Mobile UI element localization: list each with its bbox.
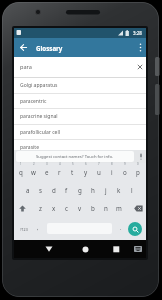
staticText: parafollicular cell: [20, 129, 61, 136]
button[interactable]: parafollicular cell: [14, 124, 146, 140]
button[interactable]: m: [112, 200, 125, 216]
button[interactable]: ?123: [14, 221, 33, 237]
staticText: p: [136, 168, 140, 176]
staticText: w: [31, 168, 36, 176]
button[interactable]: Suggest contact names? Touch for info.: [14, 150, 146, 163]
staticText: a: [26, 186, 30, 194]
button[interactable]: k: [112, 182, 125, 198]
staticText: k: [117, 186, 121, 194]
staticText: parasite: [20, 144, 39, 151]
staticText: 0: [137, 162, 139, 166]
staticText: n: [104, 204, 108, 212]
staticText: b: [91, 204, 95, 212]
button[interactable]: a: [21, 182, 34, 198]
button[interactable]: x: [47, 200, 60, 216]
staticText: l: [131, 186, 133, 194]
staticText: y: [84, 168, 88, 176]
button[interactable]: w: [27, 164, 40, 180]
staticText: 9: [124, 162, 126, 166]
staticText: j: [105, 186, 107, 194]
staticText: o: [123, 168, 127, 176]
staticText: paracentric: [20, 98, 47, 105]
button[interactable]: y: [79, 164, 92, 180]
button[interactable]: [41, 240, 56, 258]
button[interactable]: b: [86, 200, 99, 216]
button[interactable]: [14, 38, 32, 57]
button[interactable]: s: [34, 182, 47, 198]
button[interactable]: l: [125, 182, 138, 198]
staticText: ?123: [20, 227, 28, 232]
staticText: Glossary: [36, 44, 63, 52]
button[interactable]: o: [118, 164, 131, 180]
staticText: 4: [59, 162, 61, 166]
staticText: d: [52, 186, 56, 194]
staticText: g: [78, 186, 82, 194]
button[interactable]: [130, 200, 146, 216]
staticText: Golgi apparatus: [20, 82, 58, 89]
button[interactable]: e: [40, 164, 53, 180]
staticText: t: [71, 168, 74, 176]
button[interactable]: paracentric: [14, 93, 146, 109]
staticText: Suggest contact names? Touch for info.: [36, 154, 114, 160]
staticText: v: [78, 204, 82, 212]
staticText: r: [58, 168, 61, 176]
button[interactable]: p: [131, 164, 144, 180]
staticText: paracrine signal: [20, 113, 58, 120]
staticText: ,: [37, 224, 39, 231]
button[interactable]: z: [34, 200, 47, 216]
staticText: 3:28: [133, 30, 142, 36]
staticText: s: [39, 186, 42, 194]
button[interactable]: q: [14, 164, 27, 180]
staticText: 3: [46, 162, 48, 166]
staticText: x: [52, 204, 56, 212]
staticText: 5: [72, 162, 74, 166]
staticText: 1: [20, 162, 22, 166]
staticText: para: [20, 63, 32, 71]
staticText: i: [111, 168, 113, 176]
staticText: h: [91, 186, 95, 194]
button[interactable]: [14, 200, 30, 216]
staticText: 2: [33, 162, 35, 166]
staticText: e: [45, 168, 49, 176]
staticText: f: [65, 186, 68, 194]
staticText: u: [97, 168, 101, 176]
button[interactable]: r: [53, 164, 66, 180]
button[interactable]: Golgi apparatus: [14, 77, 146, 93]
staticText: q: [19, 168, 23, 176]
button[interactable]: ,: [33, 219, 42, 235]
button[interactable]: [134, 60, 146, 74]
staticText: m: [116, 204, 122, 212]
button[interactable]: parasite: [14, 139, 146, 155]
staticText: z: [39, 204, 42, 212]
button[interactable]: d: [47, 182, 60, 198]
button[interactable]: [134, 38, 146, 57]
button[interactable]: f: [60, 182, 73, 198]
button[interactable]: [109, 240, 124, 258]
button[interactable]: .: [116, 219, 125, 235]
staticText: .: [120, 224, 122, 231]
button[interactable]: j: [99, 182, 112, 198]
button[interactable]: i: [105, 164, 118, 180]
button[interactable]: t: [66, 164, 79, 180]
button[interactable]: [131, 240, 145, 258]
button[interactable]: h: [86, 182, 99, 198]
button[interactable]: [128, 222, 142, 236]
button[interactable]: [78, 240, 93, 258]
staticText: c: [65, 204, 68, 212]
staticText: 7: [98, 162, 100, 166]
staticText: 6: [85, 162, 87, 166]
button[interactable]: v: [73, 200, 86, 216]
button[interactable]: u: [92, 164, 105, 180]
button[interactable]: c: [60, 200, 73, 216]
button[interactable]: para: [14, 57, 146, 77]
button[interactable]: n: [99, 200, 112, 216]
staticText: 8: [111, 162, 113, 166]
button[interactable]: paracrine signal: [14, 108, 146, 124]
button[interactable]: g: [73, 182, 86, 198]
